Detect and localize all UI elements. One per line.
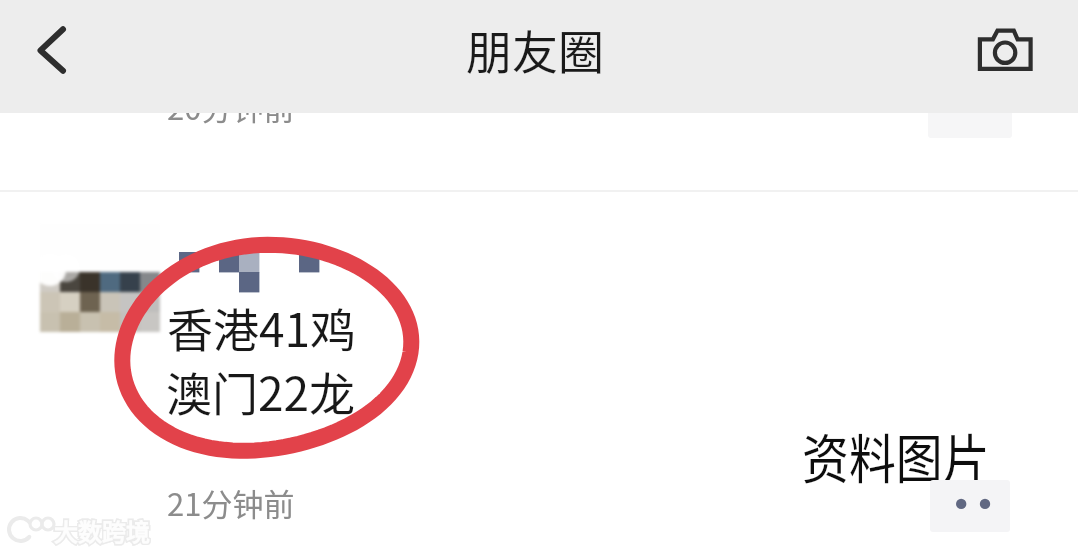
button[interactable]: Camera (968, 12, 1048, 92)
staticText: 大数跨境 (54, 513, 150, 548)
staticText: 20分钟前 (167, 84, 295, 129)
button[interactable]: More options (928, 86, 1012, 138)
button[interactable]: Avatar (40, 224, 160, 332)
staticText: 21分钟前 (167, 480, 295, 525)
staticText: 资料图片 (802, 418, 990, 496)
staticText: 大数跨境 (54, 513, 150, 548)
button[interactable]: More options (930, 480, 1010, 532)
button[interactable]: Back (14, 10, 94, 90)
staticText: 朋友圈 (466, 16, 604, 83)
staticText: 香港41鸡 (167, 294, 357, 361)
staticText: 澳门22龙 (166, 358, 356, 425)
